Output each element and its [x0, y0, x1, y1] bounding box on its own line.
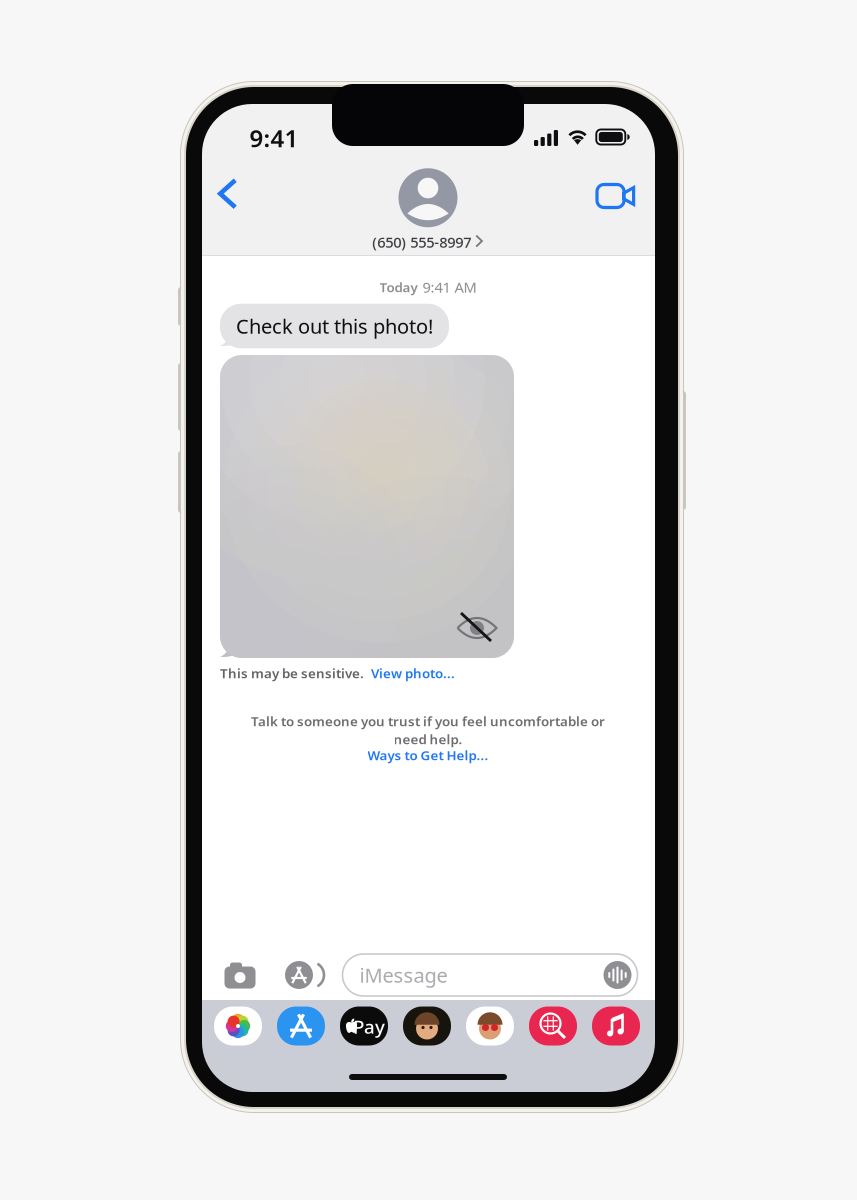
staticText: 9:41 AM: [422, 277, 476, 297]
staticText: View photo...: [371, 664, 455, 682]
button[interactable]: Photos: [214, 1006, 262, 1045]
button[interactable]: Audio message: [603, 961, 631, 989]
button[interactable]: Ways to Get Help...: [367, 746, 488, 764]
staticText: Talk to someone you trust if you feel un…: [251, 712, 605, 730]
staticText: Pay: [353, 1014, 385, 1039]
button[interactable]: Apple Pay: [340, 1006, 388, 1045]
staticText: Check out this photo!: [236, 313, 433, 339]
button[interactable]: Apps: [281, 953, 325, 997]
button[interactable]: Camera: [218, 953, 262, 997]
staticText: need help.: [393, 730, 462, 748]
staticText: This may be sensitive.: [220, 664, 364, 682]
staticText: iMessage: [359, 962, 447, 988]
button[interactable]: View photo...: [371, 664, 455, 682]
staticText: Today: [379, 278, 417, 296]
button[interactable]: Memoji: [403, 1006, 451, 1045]
staticText: (650) 555-8997: [372, 232, 471, 252]
button[interactable]: Memoji stickers: [466, 1006, 514, 1045]
button[interactable]: (650) 555-8997: [372, 168, 484, 252]
button[interactable]: App Store: [277, 1006, 325, 1045]
staticText: Ways to Get Help...: [367, 746, 488, 764]
button[interactable]: Image search: [529, 1006, 577, 1045]
staticText: 9:41: [249, 122, 298, 154]
button[interactable]: Music: [592, 1006, 640, 1045]
button[interactable]: Back: [207, 173, 253, 219]
button[interactable]: FaceTime video call: [590, 173, 642, 219]
